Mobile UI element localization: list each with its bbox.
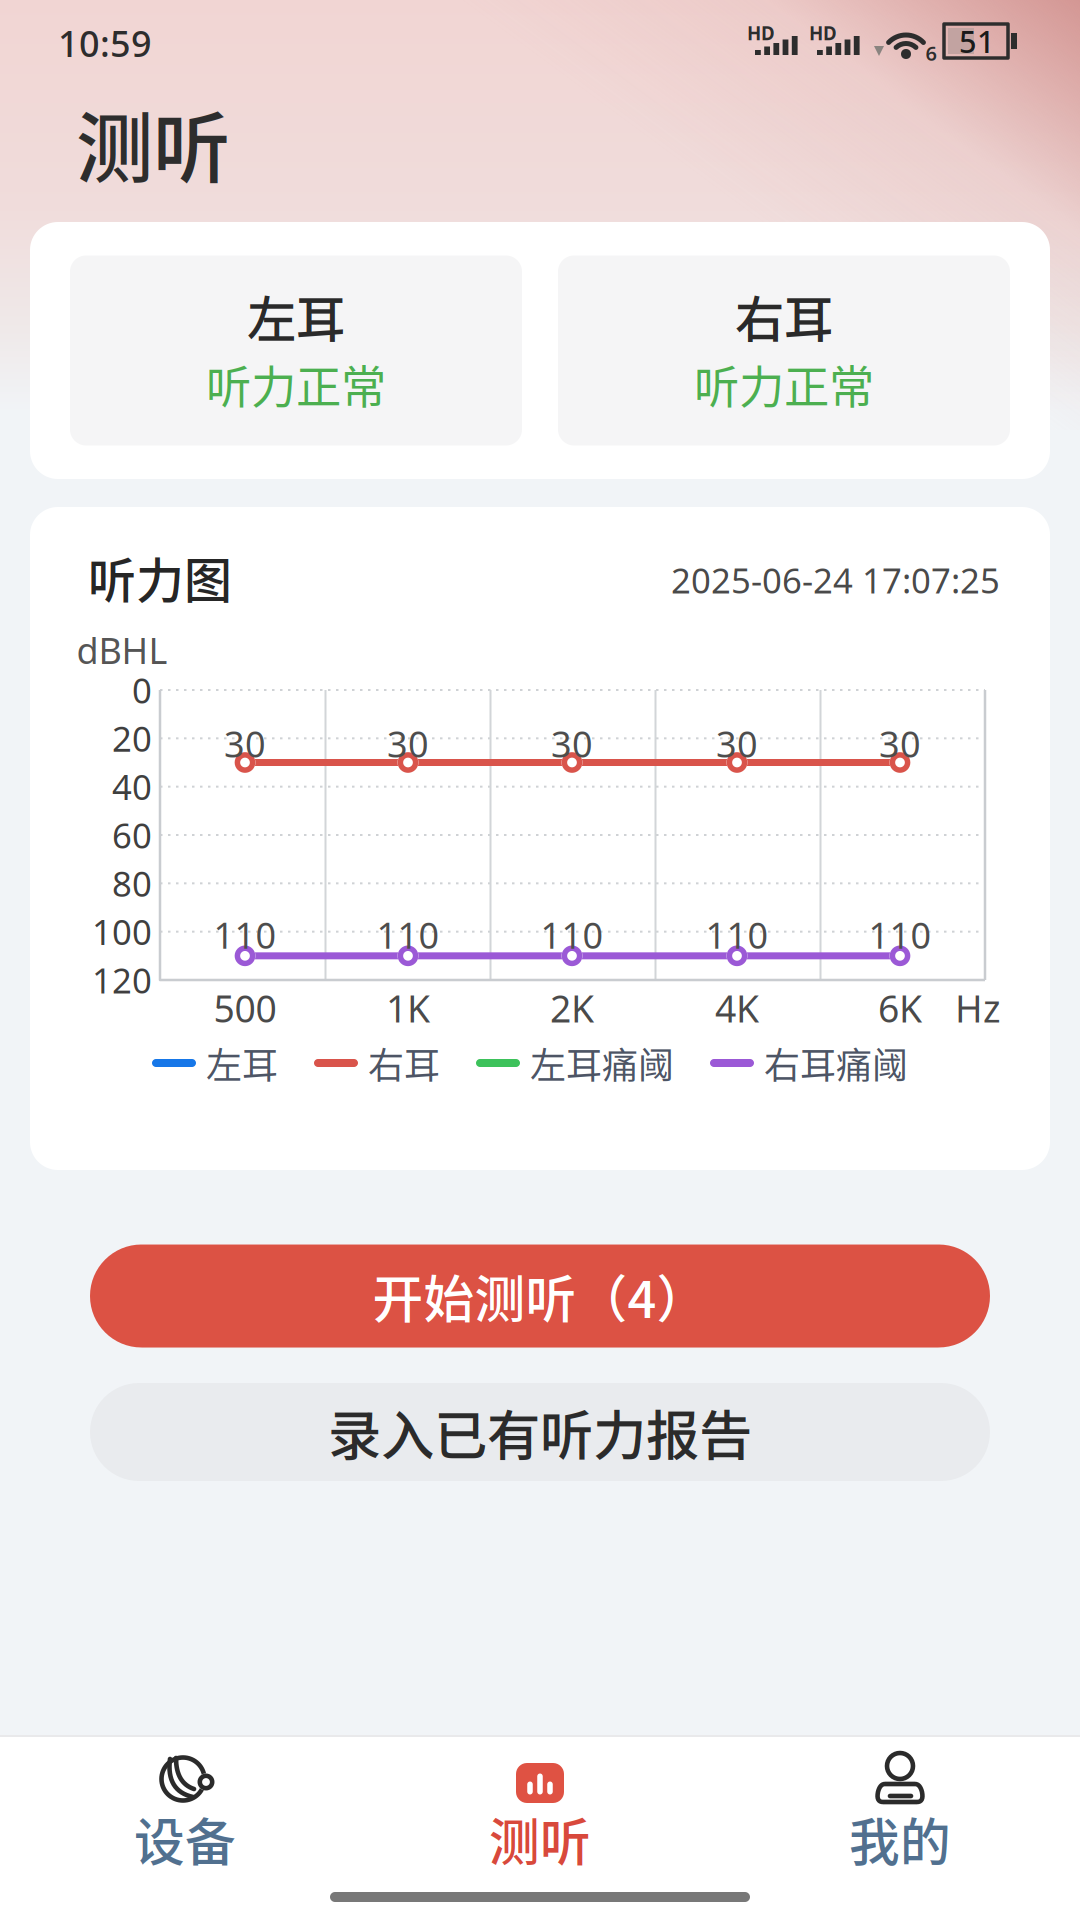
staticText: 40: [112, 764, 152, 810]
staticText: 30: [551, 720, 593, 767]
staticText: 测听: [76, 87, 230, 199]
staticText: 500: [213, 983, 276, 1033]
button[interactable]: 录入已有听力报告: [90, 1383, 990, 1481]
staticText: 60: [112, 812, 152, 858]
staticText: 我的: [849, 1802, 951, 1876]
button[interactable]: 设备: [35, 1736, 335, 1916]
staticText: 设备: [134, 1802, 236, 1876]
staticText: 120: [92, 957, 152, 1003]
staticText: 30: [879, 720, 921, 767]
staticText: 听力正常: [206, 351, 386, 417]
staticText: 30: [716, 720, 758, 767]
button[interactable]: 我的: [750, 1736, 1050, 1916]
staticText: 左耳: [206, 1037, 278, 1089]
button[interactable]: 测听: [390, 1736, 690, 1916]
staticText: 80: [112, 860, 152, 906]
staticText: 110: [376, 911, 439, 959]
staticText: 20: [112, 715, 152, 761]
staticText: dBHL: [76, 626, 167, 674]
staticText: HD: [747, 21, 775, 45]
staticText: 110: [868, 911, 931, 959]
staticText: 1K: [386, 983, 430, 1033]
staticText: 2K: [550, 983, 594, 1033]
staticText: 6K: [878, 983, 922, 1033]
staticText: 110: [213, 911, 276, 959]
staticText: Hz: [955, 983, 1001, 1033]
staticText: 51: [959, 21, 995, 61]
staticText: 开始测听（4）: [372, 1259, 707, 1333]
staticText: 听力正常: [694, 351, 874, 417]
staticText: HD: [809, 21, 837, 45]
staticText: 100: [92, 909, 152, 955]
staticText: 右耳: [368, 1037, 440, 1089]
staticText: 右耳痛阈: [764, 1037, 908, 1089]
staticText: 30: [387, 720, 429, 767]
staticText: 录入已有听力报告: [328, 1393, 752, 1471]
staticText: 0: [132, 667, 152, 713]
staticText: 4K: [715, 983, 759, 1033]
staticText: 110: [705, 911, 768, 959]
staticText: 30: [224, 720, 266, 767]
staticText: 测听: [489, 1802, 591, 1876]
button[interactable]: 开始测听（4）: [90, 1244, 990, 1347]
staticText: 10:59: [58, 19, 152, 67]
staticText: 右耳: [735, 280, 833, 351]
staticText: 2025-06-24 17:07:25: [671, 557, 1000, 603]
staticText: 左耳: [247, 280, 345, 351]
staticText: 听力图: [88, 542, 232, 612]
staticText: 左耳痛阈: [530, 1037, 674, 1089]
staticText: 110: [540, 911, 603, 959]
staticText: 6: [925, 40, 936, 66]
